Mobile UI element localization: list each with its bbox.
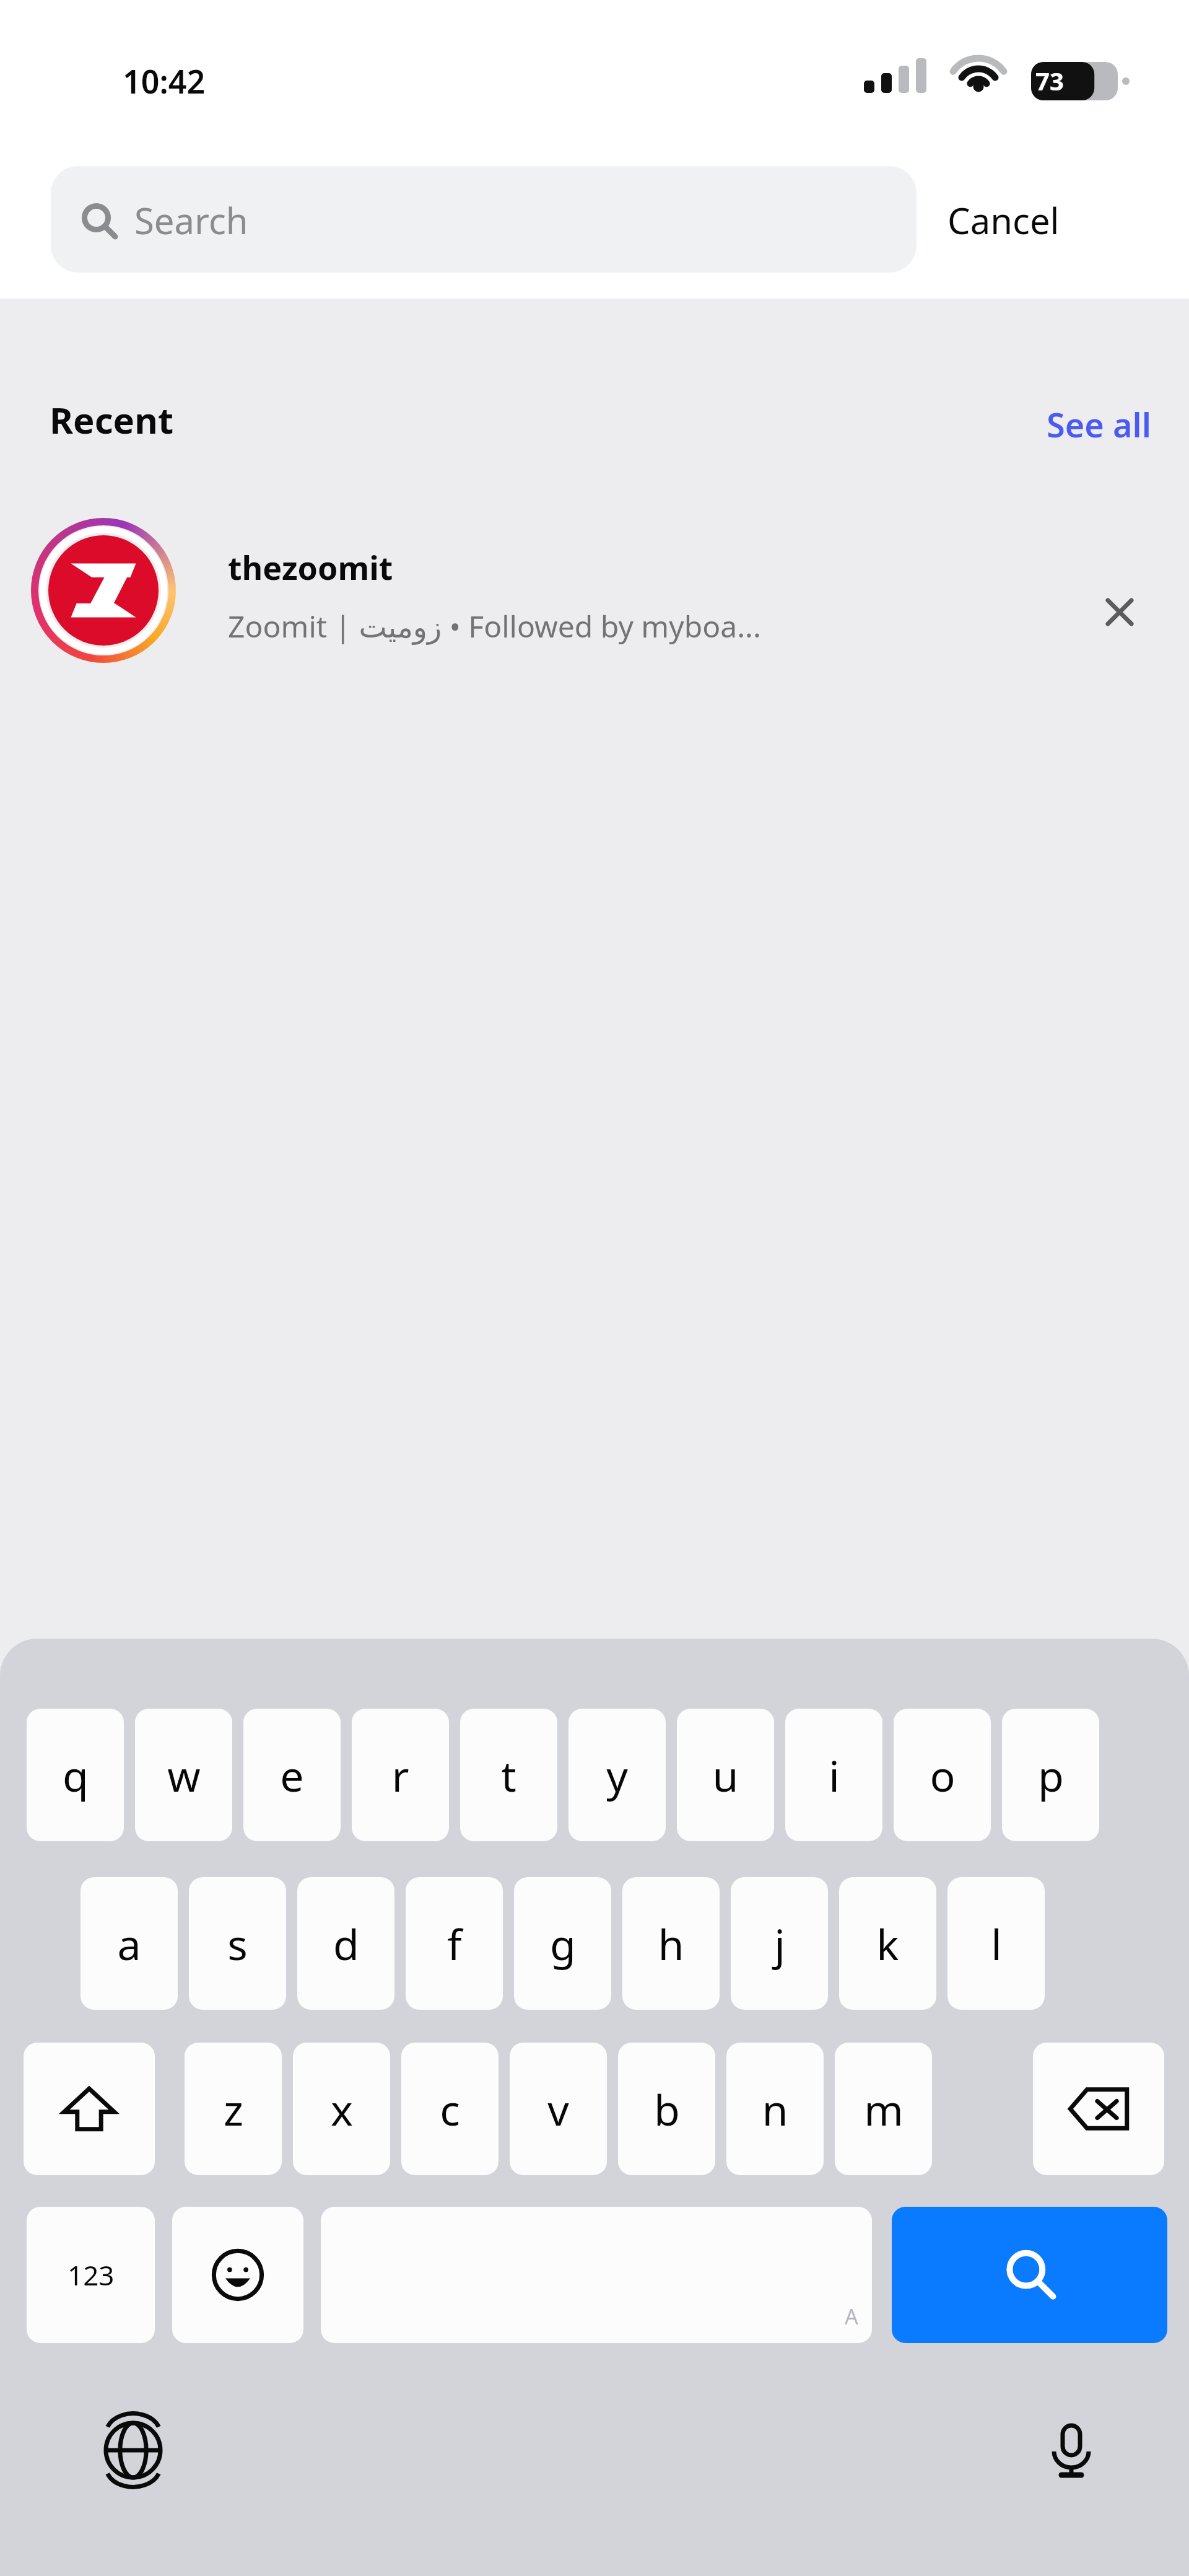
staticText: f [447, 1915, 462, 1973]
staticText: v [547, 2080, 569, 2138]
staticText: s [227, 1915, 248, 1973]
button[interactable]: r [352, 1709, 449, 1841]
staticText: q [63, 1746, 89, 1804]
staticText: p [1038, 1746, 1064, 1804]
staticText: u [712, 1746, 739, 1804]
button[interactable]: Search [892, 2207, 1167, 2343]
button[interactable]: n [726, 2043, 824, 2175]
button[interactable]: i [785, 1709, 882, 1841]
staticText: c [440, 2080, 460, 2138]
button[interactable]: Switch keyboard [81, 2398, 186, 2503]
button[interactable]: b [618, 2043, 715, 2175]
staticText: e [280, 1746, 304, 1804]
staticText: 10:42 [123, 59, 206, 103]
button[interactable]: See all [966, 390, 1152, 458]
button[interactable]: Emoji [172, 2207, 303, 2343]
staticText: z [224, 2080, 243, 2138]
button[interactable]: Backspace [1033, 2043, 1164, 2175]
button[interactable]: k [839, 1877, 936, 2010]
button[interactable]: Dictation [1019, 2398, 1124, 2503]
staticText: Recent [50, 395, 174, 444]
staticText: Cancel [947, 196, 1060, 245]
staticText: d [333, 1915, 359, 1973]
staticText: Zoomit | زومیت • Followed by myboa... [228, 606, 1045, 646]
staticText: 73 [1035, 64, 1064, 97]
button[interactable]: p [1002, 1709, 1099, 1841]
staticText: a [117, 1915, 141, 1973]
button[interactable]: Cancel [947, 173, 1146, 266]
button[interactable]: a [81, 1877, 178, 2010]
staticText: k [876, 1915, 899, 1973]
staticText: A [845, 2302, 858, 2331]
button[interactable]: m [835, 2043, 932, 2175]
button[interactable]: q [27, 1709, 124, 1841]
button[interactable]: w [135, 1709, 232, 1841]
staticText: o [930, 1746, 956, 1804]
button[interactable]: j [731, 1877, 828, 2010]
button[interactable]: Remove [1078, 570, 1161, 654]
staticText: g [550, 1915, 576, 1973]
button[interactable]: o [894, 1709, 991, 1841]
button[interactable]: c [401, 2043, 499, 2175]
staticText: x [331, 2080, 353, 2138]
staticText: t [501, 1746, 516, 1804]
button[interactable]: 123 [27, 2207, 155, 2343]
staticText: w [167, 1746, 201, 1804]
button[interactable]: s [189, 1877, 286, 2010]
button[interactable]: f [406, 1877, 503, 2010]
button[interactable]: g [514, 1877, 611, 2010]
staticText: y [606, 1746, 628, 1804]
staticText: See all [1047, 401, 1152, 447]
button[interactable]: u [677, 1709, 774, 1841]
staticText: n [762, 2080, 788, 2138]
staticText: h [658, 1915, 684, 1973]
staticText: l [991, 1915, 1002, 1973]
button[interactable]: e [243, 1709, 341, 1841]
button[interactable]: thezoomit [0, 508, 1189, 2576]
button[interactable]: y [568, 1709, 666, 1841]
staticText: r [391, 1746, 409, 1804]
button[interactable]: l [947, 1877, 1045, 2010]
button[interactable]: Search [51, 166, 917, 273]
button[interactable]: Shift [24, 2043, 155, 2175]
staticText: b [654, 2080, 680, 2138]
staticText: m [864, 2080, 904, 2138]
button[interactable]: z [185, 2043, 282, 2175]
button[interactable]: d [297, 1877, 394, 2010]
button[interactable]: v [510, 2043, 607, 2175]
staticText: j [774, 1915, 785, 1973]
button[interactable]: t [460, 1709, 557, 1841]
staticText: Search [134, 196, 248, 245]
button[interactable]: x [293, 2043, 390, 2175]
button[interactable]: h [622, 1877, 720, 2010]
staticText: i [829, 1746, 840, 1804]
staticText: 123 [68, 2256, 115, 2293]
staticText: thezoomit [228, 545, 393, 589]
